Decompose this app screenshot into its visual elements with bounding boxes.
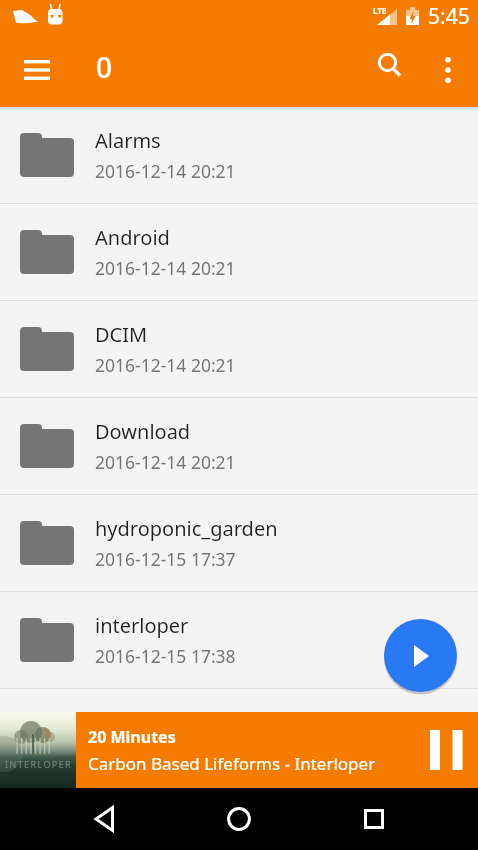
staticText: hydroponic_garden <box>95 515 278 542</box>
button[interactable] <box>414 712 478 788</box>
staticText: Android <box>95 224 170 251</box>
button[interactable] <box>73 788 135 850</box>
staticText: Carbon Based Lifeforms - Interloper <box>88 752 376 775</box>
staticText: 2016-12-15 17:37 <box>95 547 236 571</box>
staticText: 2016-12-14 20:21 <box>95 256 236 280</box>
staticText: interloper <box>95 612 189 639</box>
button[interactable]: INTERLOPER <box>0 712 478 788</box>
button[interactable] <box>208 788 270 850</box>
staticText: 2016-12-15 17:38 <box>95 644 236 668</box>
staticText: 2016-12-14 20:21 <box>95 159 236 183</box>
button[interactable]: interloper <box>0 592 478 689</box>
staticText: 2016-12-14 20:21 <box>95 353 236 377</box>
button[interactable] <box>13 46 61 94</box>
staticText: 5:45 <box>428 2 470 31</box>
button[interactable]: Download <box>0 398 478 495</box>
staticText: 20 Minutes <box>88 726 176 748</box>
button[interactable] <box>366 42 414 90</box>
staticText: 2016-12-14 20:21 <box>95 450 236 474</box>
button[interactable]: hydroponic_garden <box>0 495 478 592</box>
staticText: DCIM <box>95 321 148 348</box>
staticText: LTE <box>373 5 387 16</box>
button[interactable]: Android <box>0 204 478 301</box>
button[interactable] <box>384 619 457 692</box>
staticText: Download <box>95 418 191 445</box>
staticText: 0 <box>96 48 113 86</box>
button[interactable]: Alarms <box>0 107 478 204</box>
button[interactable]: DCIM <box>0 301 478 398</box>
staticText: INTERLOPER <box>5 758 73 770</box>
button[interactable] <box>424 46 472 94</box>
button[interactable] <box>343 788 405 850</box>
staticText: Alarms <box>95 127 161 154</box>
